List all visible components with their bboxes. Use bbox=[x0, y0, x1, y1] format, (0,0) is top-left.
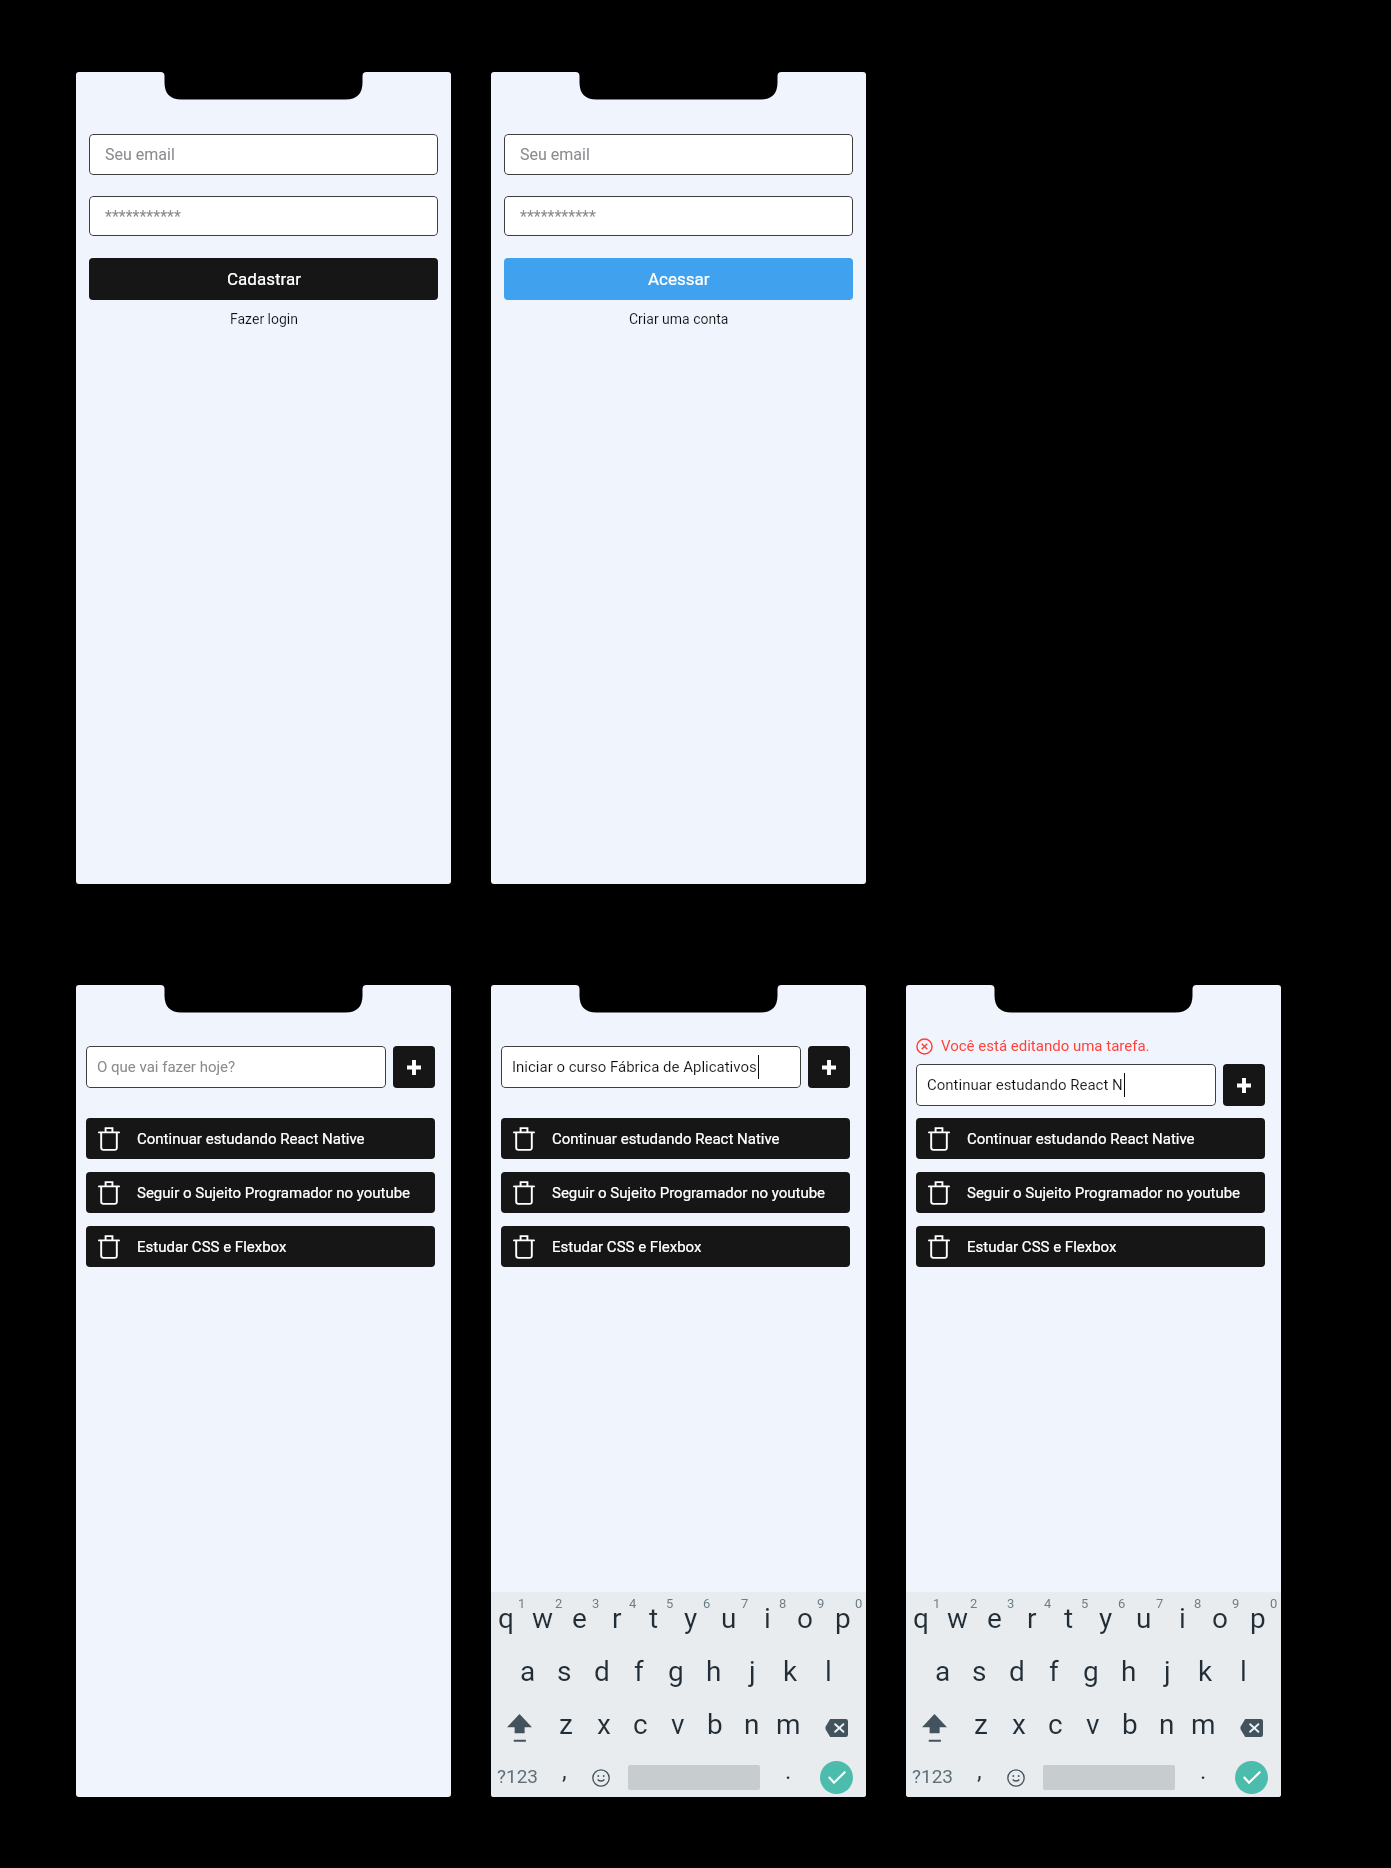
button[interactable]: . bbox=[1185, 1758, 1222, 1797]
button[interactable]: k bbox=[771, 1651, 809, 1702]
button[interactable]: u bbox=[714, 1600, 752, 1651]
button[interactable]: a bbox=[924, 1651, 961, 1702]
button[interactable]: c bbox=[1037, 1702, 1074, 1753]
button[interactable]: *********** bbox=[504, 196, 853, 236]
button[interactable]: Continuar estudando React Native bbox=[86, 1118, 435, 1159]
staticText: c bbox=[1048, 1708, 1063, 1741]
button[interactable]: Adicionar tarefa bbox=[1223, 1064, 1265, 1106]
button[interactable]: Backspace bbox=[807, 1702, 866, 1753]
button[interactable]: c bbox=[622, 1702, 659, 1753]
button[interactable]: p bbox=[1243, 1600, 1281, 1651]
button[interactable]: Estudar CSS e Flexbox bbox=[501, 1226, 850, 1267]
button[interactable]: b bbox=[1111, 1702, 1148, 1753]
button[interactable]: g bbox=[657, 1651, 695, 1702]
button[interactable]: Space bbox=[618, 1758, 770, 1797]
button[interactable]: r bbox=[1017, 1600, 1054, 1651]
button[interactable]: Seguir o Sujeito Programador no youtube bbox=[916, 1172, 1265, 1213]
staticText: p bbox=[835, 1602, 851, 1635]
button[interactable]: t bbox=[1054, 1600, 1091, 1651]
button[interactable]: l bbox=[809, 1651, 847, 1702]
button[interactable]: Seu email bbox=[504, 134, 853, 175]
button[interactable]: Iniciar o curso Fábrica de Aplicativos bbox=[501, 1046, 801, 1088]
button[interactable]: w bbox=[943, 1600, 980, 1651]
button[interactable]: v bbox=[659, 1702, 696, 1753]
button[interactable]: Continuar estudando React Native bbox=[501, 1118, 850, 1159]
staticText: Seu email bbox=[105, 145, 175, 164]
button[interactable]: Continuar estudando React N bbox=[916, 1064, 1216, 1106]
staticText: Acessar bbox=[648, 269, 710, 289]
button[interactable]: k bbox=[1186, 1651, 1224, 1702]
button[interactable]: d bbox=[583, 1651, 620, 1702]
button[interactable]: u bbox=[1129, 1600, 1167, 1651]
button[interactable]: w bbox=[528, 1600, 565, 1651]
button[interactable]: ?123 bbox=[491, 1758, 544, 1797]
button[interactable]: y bbox=[1091, 1600, 1129, 1651]
button[interactable]: Fazer login bbox=[89, 300, 438, 338]
button[interactable]: j bbox=[733, 1651, 771, 1702]
button[interactable]: ?123 bbox=[906, 1758, 959, 1797]
button[interactable]: y bbox=[676, 1600, 714, 1651]
button[interactable]: Acessar bbox=[504, 258, 853, 300]
button[interactable]: , bbox=[544, 1758, 584, 1797]
button[interactable]: Confirmar bbox=[807, 1758, 866, 1797]
button[interactable]: s bbox=[961, 1651, 998, 1702]
button[interactable]: Shift bbox=[491, 1702, 547, 1753]
staticText: f bbox=[634, 1655, 644, 1688]
button[interactable]: f bbox=[620, 1651, 657, 1702]
button[interactable]: o bbox=[790, 1600, 828, 1651]
button[interactable]: o bbox=[1205, 1600, 1243, 1651]
button[interactable]: Seguir o Sujeito Programador no youtube bbox=[501, 1172, 850, 1213]
button[interactable]: q bbox=[491, 1600, 528, 1651]
button[interactable]: v bbox=[1074, 1702, 1111, 1753]
button[interactable]: Space bbox=[1033, 1758, 1185, 1797]
button[interactable]: Confirmar bbox=[1222, 1758, 1281, 1797]
button[interactable]: e bbox=[980, 1600, 1017, 1651]
button[interactable]: t bbox=[639, 1600, 676, 1651]
staticText: o bbox=[797, 1602, 813, 1635]
staticText: 1 bbox=[518, 1596, 526, 1611]
button[interactable]: Backspace bbox=[1222, 1702, 1281, 1753]
button[interactable]: z bbox=[547, 1702, 585, 1753]
button[interactable]: Cadastrar bbox=[89, 258, 438, 300]
button[interactable]: f bbox=[1035, 1651, 1072, 1702]
button[interactable]: , bbox=[959, 1758, 999, 1797]
button[interactable]: *********** bbox=[89, 196, 438, 236]
button[interactable]: a bbox=[509, 1651, 546, 1702]
button[interactable]: b bbox=[696, 1702, 733, 1753]
button[interactable]: x bbox=[585, 1702, 622, 1753]
staticText: u bbox=[1136, 1602, 1152, 1635]
button[interactable]: e bbox=[565, 1600, 602, 1651]
button[interactable]: O que vai fazer hoje? bbox=[86, 1046, 386, 1088]
button[interactable]: Seu email bbox=[89, 134, 438, 175]
button[interactable]: n bbox=[1148, 1702, 1185, 1753]
button[interactable]: Seguir o Sujeito Programador no youtube bbox=[86, 1172, 435, 1213]
button[interactable]: i bbox=[752, 1600, 790, 1651]
staticText: a bbox=[935, 1655, 951, 1688]
button[interactable]: Estudar CSS e Flexbox bbox=[916, 1226, 1265, 1267]
button[interactable]: Criar uma conta bbox=[504, 300, 853, 338]
button[interactable]: r bbox=[602, 1600, 639, 1651]
button[interactable]: Estudar CSS e Flexbox bbox=[86, 1226, 435, 1267]
button[interactable]: s bbox=[546, 1651, 583, 1702]
button[interactable]: Emoji bbox=[584, 1758, 618, 1797]
button[interactable]: m bbox=[1185, 1702, 1222, 1753]
button[interactable]: l bbox=[1224, 1651, 1262, 1702]
button[interactable]: d bbox=[998, 1651, 1035, 1702]
button[interactable]: Shift bbox=[906, 1702, 962, 1753]
button[interactable]: n bbox=[733, 1702, 770, 1753]
button[interactable]: h bbox=[1110, 1651, 1148, 1702]
button[interactable]: z bbox=[962, 1702, 1000, 1753]
button[interactable]: p bbox=[828, 1600, 866, 1651]
button[interactable]: i bbox=[1167, 1600, 1205, 1651]
button[interactable]: Adicionar tarefa bbox=[808, 1046, 850, 1088]
button[interactable]: q bbox=[906, 1600, 943, 1651]
button[interactable]: g bbox=[1072, 1651, 1110, 1702]
button[interactable]: Adicionar tarefa bbox=[393, 1046, 435, 1088]
button[interactable]: x bbox=[1000, 1702, 1037, 1753]
button[interactable]: . bbox=[770, 1758, 807, 1797]
button[interactable]: Continuar estudando React Native bbox=[916, 1118, 1265, 1159]
button[interactable]: j bbox=[1148, 1651, 1186, 1702]
button[interactable]: Emoji bbox=[999, 1758, 1033, 1797]
button[interactable]: h bbox=[695, 1651, 733, 1702]
button[interactable]: m bbox=[770, 1702, 807, 1753]
